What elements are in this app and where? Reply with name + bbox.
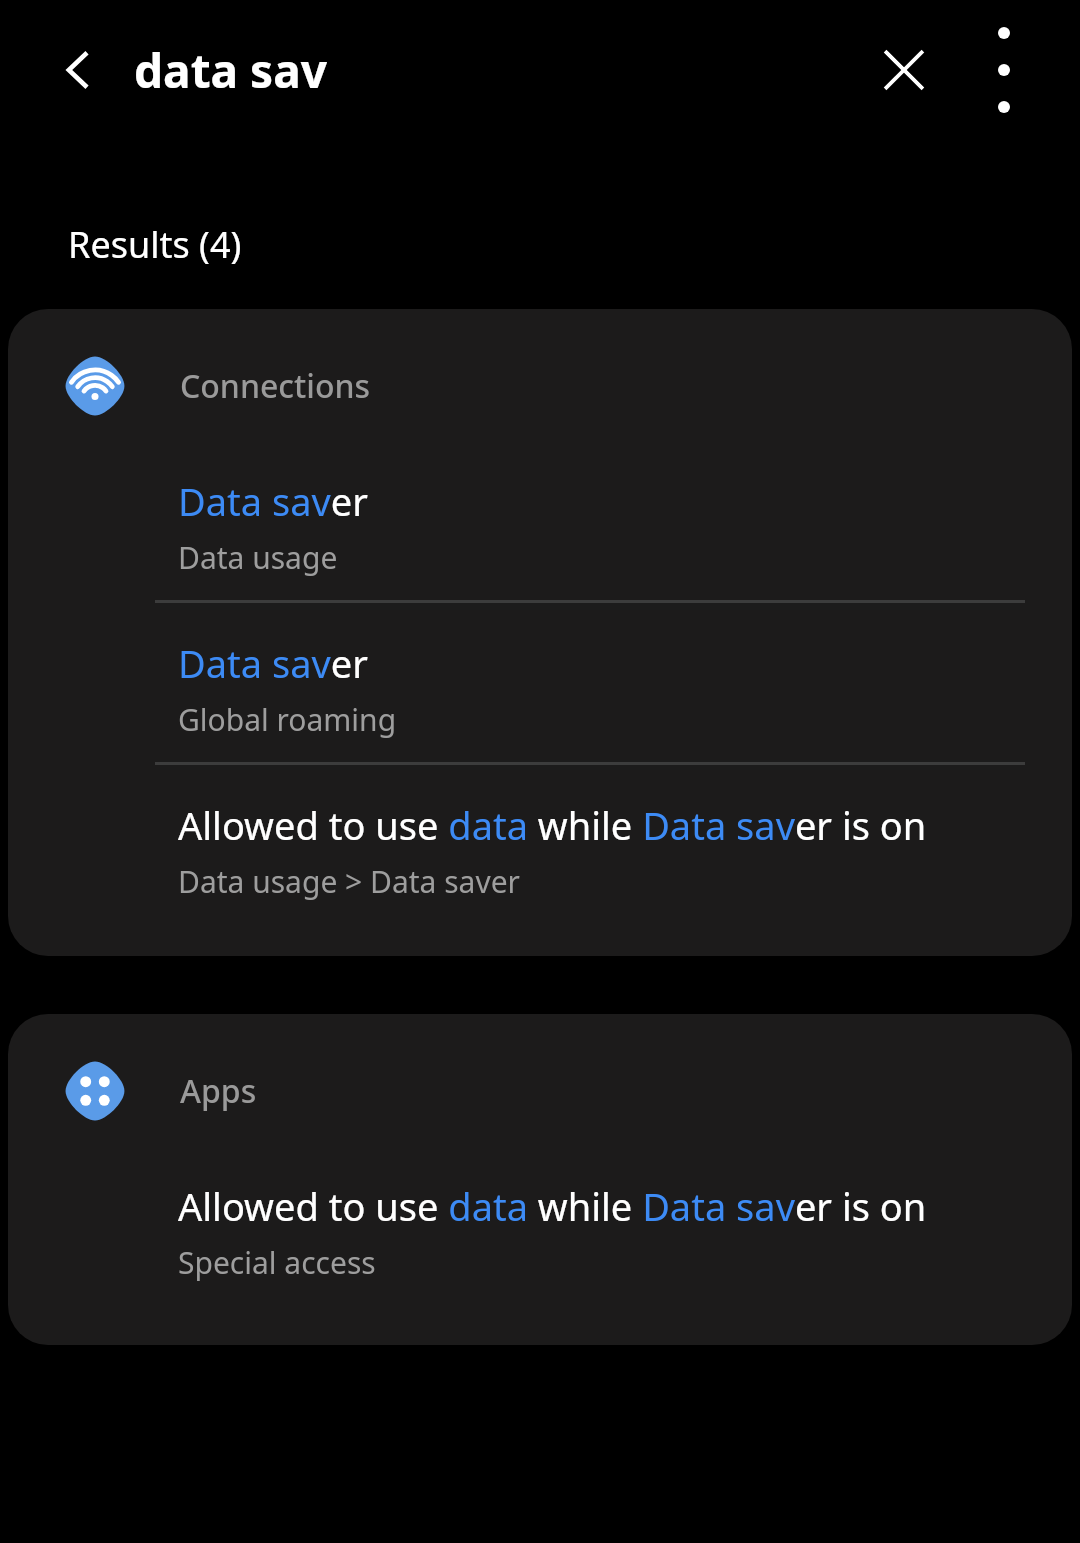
staticText: Data usage — [178, 537, 338, 578]
staticText: Data saver — [178, 637, 368, 689]
staticText: Special access — [178, 1242, 376, 1283]
staticText: Data saver — [178, 475, 368, 527]
staticText: data sav — [134, 39, 852, 102]
staticText: Data usage > Data saver — [178, 861, 520, 902]
staticText: Apps — [180, 1069, 257, 1113]
staticText: Global roaming — [178, 699, 397, 740]
button[interactable]: Data saver — [8, 441, 1072, 600]
button[interactable]: Data saver — [8, 603, 1072, 762]
button[interactable]: Allowed to use data while Data saver is … — [8, 765, 1072, 924]
button[interactable]: More options — [956, 22, 1052, 118]
button[interactable]: Back — [26, 18, 130, 122]
staticText: Results (4) — [68, 220, 242, 269]
button[interactable]: Connections — [8, 309, 1072, 441]
button[interactable]: Allowed to use data while Data saver is … — [8, 1146, 1072, 1305]
button[interactable]: Apps — [8, 1014, 1072, 1146]
staticText: Allowed to use data while Data saver is … — [178, 1180, 927, 1232]
staticText: Allowed to use data while Data saver is … — [178, 799, 927, 851]
button[interactable]: Clear search — [852, 18, 956, 122]
staticText: Connections — [180, 364, 371, 408]
